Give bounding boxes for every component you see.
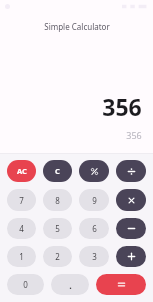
button[interactable]: 3 [79,246,109,267]
button[interactable]: Percent [79,160,109,182]
button[interactable]: 0 [7,274,44,295]
button[interactable]: 2 [43,246,72,267]
button[interactable]: Divide [116,160,146,182]
button[interactable]: 6 [79,218,109,239]
staticText: C [55,166,60,176]
staticText: 1 [19,251,24,262]
staticText: 7 [19,195,24,206]
staticText: 8 [55,195,60,206]
button[interactable]: . [51,274,89,295]
button[interactable]: 4 [7,218,36,239]
staticText: 6 [92,223,97,234]
staticText: 9 [92,195,97,206]
staticText: 5 [55,223,60,234]
staticText: 356 [102,91,142,122]
button[interactable]: 9 [79,189,109,211]
staticText: 2 [55,251,60,262]
button[interactable]: Subtract [116,218,146,239]
staticText: 4 [19,223,24,234]
button[interactable]: 1 [7,246,36,267]
staticText: Simple Calculator [44,21,110,32]
button[interactable]: C [43,160,72,182]
button[interactable]: Multiply [116,189,146,211]
staticText: 356 [126,129,142,141]
staticText: 3 [92,251,97,262]
staticText: AC [17,166,27,176]
button[interactable]: Equals [96,274,146,295]
staticText: . [69,279,72,291]
button[interactable]: 5 [43,218,72,239]
button[interactable]: 8 [43,189,72,211]
button[interactable]: Add [116,246,146,267]
staticText: 0 [23,279,28,290]
button[interactable]: AC [7,160,36,182]
button[interactable]: 7 [7,189,36,211]
